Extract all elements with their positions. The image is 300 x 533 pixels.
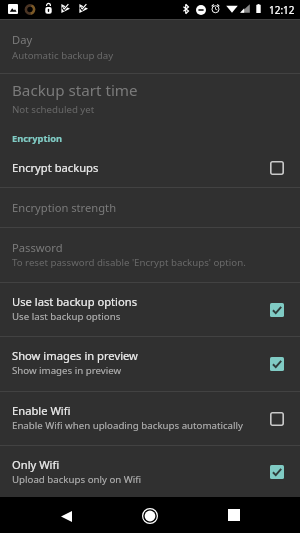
staticText: To reset password disable 'Encrypt backu… [12,256,246,269]
staticText: Enable Wifi when uploading backups autom… [12,419,243,432]
button[interactable]: Use last backup options [0,283,300,336]
staticText: 12:12 [269,3,295,17]
button[interactable]: Home [128,497,172,533]
staticText: Encryption [12,132,63,145]
staticText: Use last backup options [12,294,138,309]
button[interactable]: Encryption strength [0,188,300,227]
other: Checked checkbox [270,465,284,479]
staticText: Not scheduled yet [12,103,95,116]
staticText: Enable Wifi [12,403,71,418]
other: Unchecked checkbox [270,412,284,426]
staticText: Automatic backup day [12,49,114,62]
staticText: Show images in preview [12,364,122,377]
button[interactable]: Recent apps [212,497,256,533]
staticText: Use last backup options [12,310,121,323]
button[interactable]: Password [0,228,300,282]
other: Checked checkbox [270,303,284,317]
button[interactable]: Encrypt backups [0,148,300,187]
button[interactable]: Show images in preview [0,337,300,391]
button[interactable]: Enable Wifi [0,392,300,445]
staticText: Only Wifi [12,457,60,472]
button[interactable]: Backup start time [0,74,300,128]
other: Checked checkbox [270,357,284,371]
button[interactable]: Day [0,20,300,73]
staticText: Upload backups only on Wifi [12,473,142,486]
staticText: Day [12,32,33,47]
staticText: Backup start time [12,80,138,101]
staticText: Encrypt backups [12,160,99,175]
staticText: Password [12,240,63,255]
button[interactable]: Only Wifi [0,446,300,497]
other: Unchecked checkbox [270,161,284,175]
staticText: Encryption strength [12,200,117,215]
staticText: Show images in preview [12,348,138,363]
button[interactable]: Back [44,497,88,533]
